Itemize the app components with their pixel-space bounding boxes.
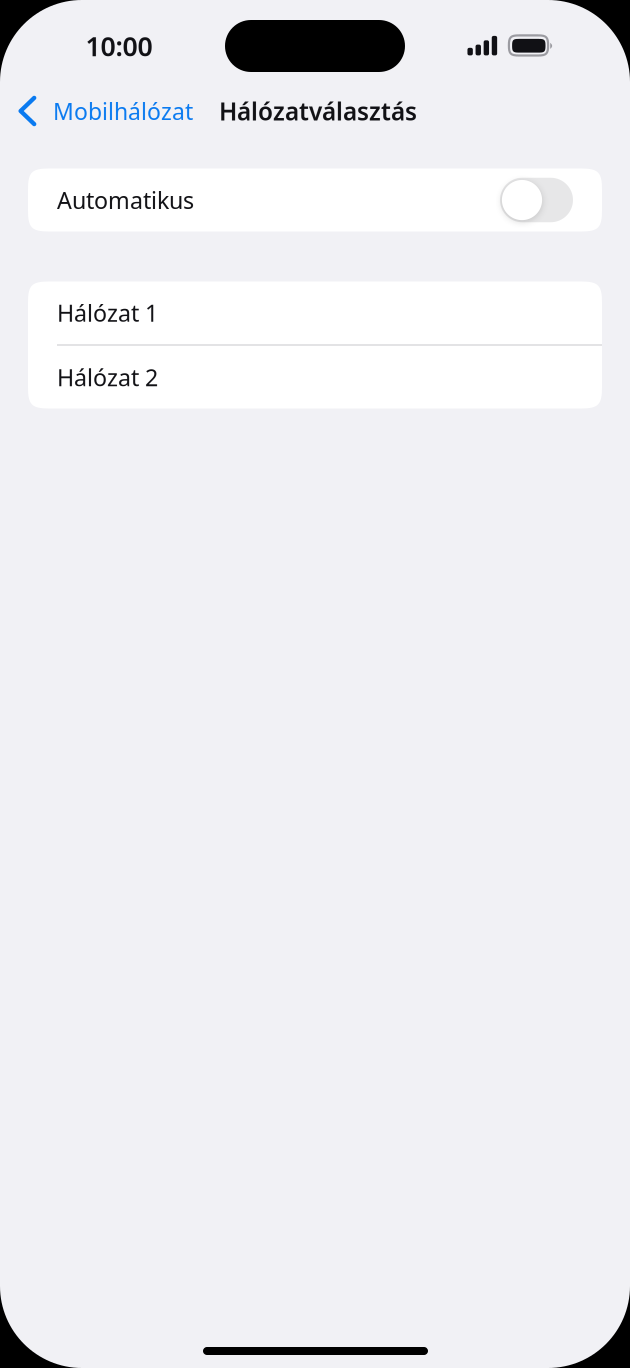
staticText: Mobilhálózat	[53, 95, 193, 127]
button[interactable]: Mobilhálózat	[0, 85, 203, 137]
button[interactable]: Hálózat 1	[28, 281, 602, 344]
staticText: 10:00	[85, 28, 152, 64]
staticText: Hálózat 1	[57, 297, 158, 329]
button[interactable]: Automatikus	[500, 178, 573, 222]
button[interactable]: Hálózat 2	[28, 346, 602, 408]
staticText: Automatikus	[57, 184, 194, 216]
staticText: Hálózatválasztás	[219, 94, 417, 128]
staticText: Hálózat 2	[57, 361, 158, 393]
